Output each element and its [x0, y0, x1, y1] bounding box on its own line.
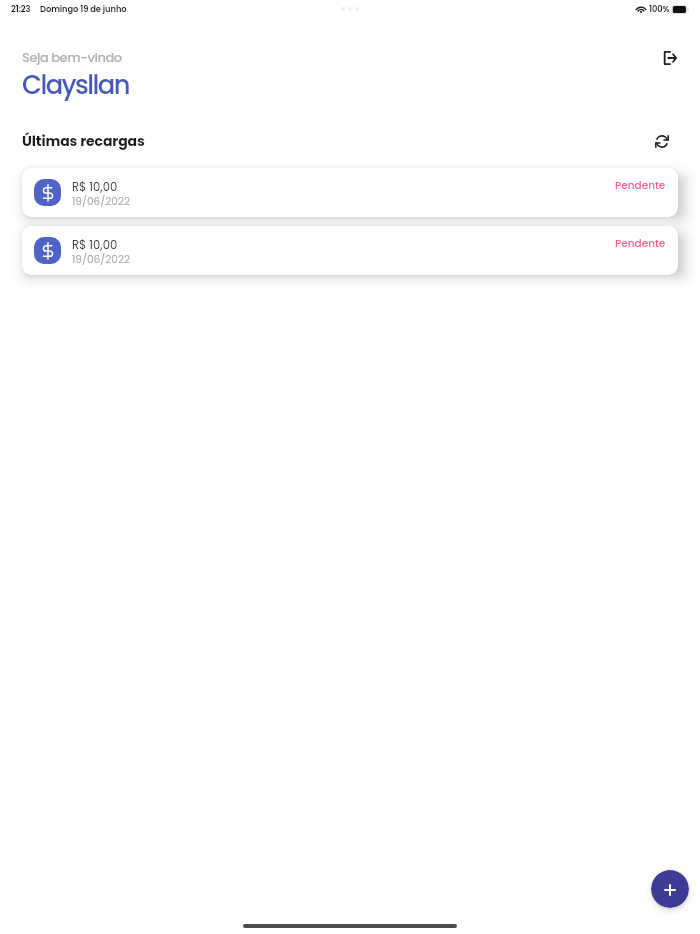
button[interactable]: Sair — [656, 44, 684, 72]
staticText: Domingo 19 de junho — [40, 3, 127, 15]
staticText: 100% — [649, 3, 670, 15]
button[interactable]: R$ 10,00 — [22, 226, 678, 275]
staticText: Pendente — [615, 236, 666, 251]
button[interactable]: Atualizar — [648, 127, 676, 155]
staticText: Seja bem-vindo — [22, 48, 122, 66]
staticText: Claysllan — [22, 67, 129, 103]
staticText: R$ 10,00 — [72, 179, 118, 195]
button[interactable]: Adicionar recarga — [651, 870, 689, 908]
staticText: Pendente — [615, 178, 666, 193]
staticText: 19/06/2022 — [72, 194, 130, 209]
staticText: Últimas recargas — [22, 131, 145, 151]
button[interactable]: R$ 10,00 — [22, 168, 678, 217]
staticText: 21:23 — [11, 3, 31, 15]
staticText: R$ 10,00 — [72, 237, 118, 253]
staticText: 19/06/2022 — [72, 252, 130, 267]
